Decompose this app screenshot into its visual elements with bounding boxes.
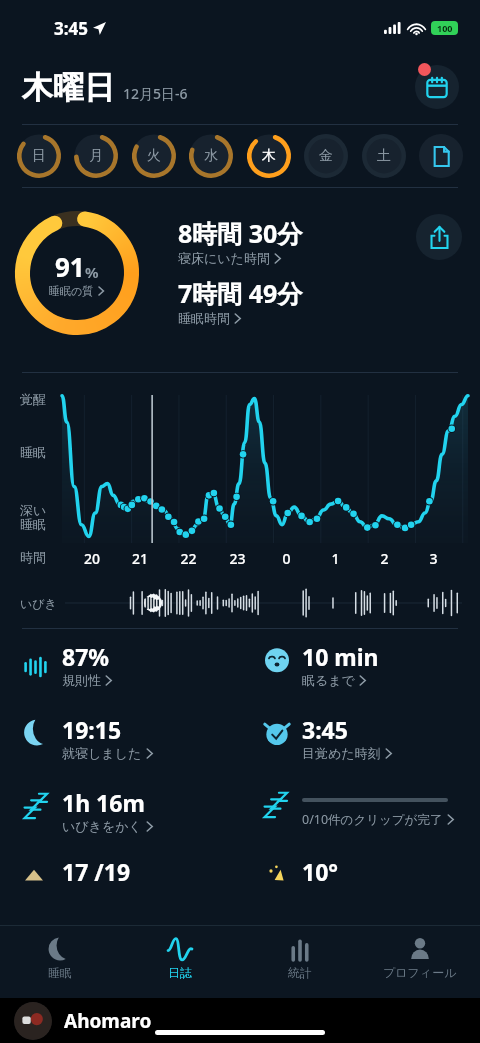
staticText: 土 <box>377 147 391 165</box>
button[interactable]: 水 <box>188 133 234 179</box>
staticText: 木曜日 <box>22 68 115 107</box>
staticText: いびきをかく <box>62 818 142 834</box>
button[interactable]: 7時間 49分 <box>178 276 303 326</box>
button[interactable]: 日 <box>16 133 62 179</box>
button[interactable]: 10 min <box>240 641 480 688</box>
staticText: 17 /19 <box>62 856 131 887</box>
staticText: 10 min <box>302 641 379 672</box>
staticText: 22 <box>164 549 213 568</box>
staticText: 睡眠 <box>20 444 46 460</box>
button[interactable]: 3:45 <box>240 714 480 761</box>
staticText: 統計 <box>288 965 312 980</box>
staticText: 91 <box>55 249 85 284</box>
button[interactable]: 木 <box>246 133 292 179</box>
button[interactable]: 0/10件のクリップが完了 <box>240 787 480 828</box>
button[interactable]: 日誌 <box>120 934 240 982</box>
staticText: 日誌 <box>168 965 192 980</box>
button[interactable]: いびき <box>0 586 480 620</box>
button[interactable]: 統計 <box>240 934 360 982</box>
staticText: 0/10件のクリップが完了 <box>302 811 443 828</box>
staticText: 睡眠 <box>48 965 72 980</box>
staticText: 8時間 30分 <box>178 216 303 250</box>
staticText: プロフィール <box>383 965 457 980</box>
button[interactable] <box>62 395 468 543</box>
staticText: 木 <box>262 147 276 165</box>
button[interactable]: Profile avatar <box>14 1002 52 1040</box>
staticText: 1 <box>311 549 360 568</box>
staticText: 日 <box>32 147 46 165</box>
staticText: 規則性 <box>62 672 101 688</box>
staticText: 睡眠の質 <box>49 284 94 298</box>
staticText: 12月5日-6 <box>123 84 188 103</box>
button[interactable]: 金 <box>303 133 349 179</box>
staticText: 21 <box>116 549 164 568</box>
staticText: 0 <box>262 549 311 568</box>
button[interactable]: 91 <box>15 211 139 335</box>
staticText: 金 <box>319 147 333 165</box>
staticText: いびき <box>20 596 57 611</box>
button[interactable]: プロフィール <box>360 934 480 982</box>
button[interactable]: 87% <box>0 641 240 688</box>
button[interactable]: Notes <box>418 133 464 179</box>
staticText: 7時間 49分 <box>178 276 303 310</box>
button[interactable]: 8時間 30分 <box>178 216 303 266</box>
staticText: 就寝しました <box>62 745 142 761</box>
button[interactable]: 1h 16m <box>0 787 240 834</box>
staticText: 目覚めた時刻 <box>302 745 381 761</box>
staticText: 3 <box>409 549 458 568</box>
staticText: 100 <box>437 22 453 34</box>
button[interactable]: 睡眠 <box>0 934 120 982</box>
button[interactable]: Share <box>416 214 462 260</box>
staticText: 23 <box>213 549 262 568</box>
staticText: 火 <box>147 147 161 165</box>
button[interactable]: 土 <box>361 133 407 179</box>
button[interactable]: 10° <box>240 856 480 887</box>
button[interactable]: 月 <box>73 133 119 179</box>
staticText: 3:45 <box>54 17 88 40</box>
staticText: 20 <box>68 549 116 568</box>
staticText: 深い 睡眠 <box>20 502 47 533</box>
staticText: 月 <box>89 147 103 165</box>
staticText: 10° <box>302 856 339 887</box>
staticText: % <box>85 262 99 282</box>
staticText: 時間 <box>20 549 46 565</box>
staticText: 87% <box>62 641 110 672</box>
button[interactable]: 19:15 <box>0 714 240 761</box>
staticText: 覚醒 <box>20 391 46 407</box>
staticText: 睡眠時間 <box>178 310 230 326</box>
staticText: 水 <box>204 147 218 165</box>
staticText: 2 <box>360 549 409 568</box>
button[interactable]: 火 <box>131 133 177 179</box>
staticText: 1h 16m <box>62 787 145 818</box>
staticText: 19:15 <box>62 714 122 745</box>
staticText: 3:45 <box>302 714 348 745</box>
staticText: Ahomaro <box>64 1008 152 1034</box>
button[interactable]: Calendar <box>412 62 462 112</box>
button[interactable]: 17 /19 <box>0 856 240 887</box>
staticText: 寝床にいた時間 <box>178 250 270 266</box>
staticText: 眠るまで <box>302 672 355 688</box>
